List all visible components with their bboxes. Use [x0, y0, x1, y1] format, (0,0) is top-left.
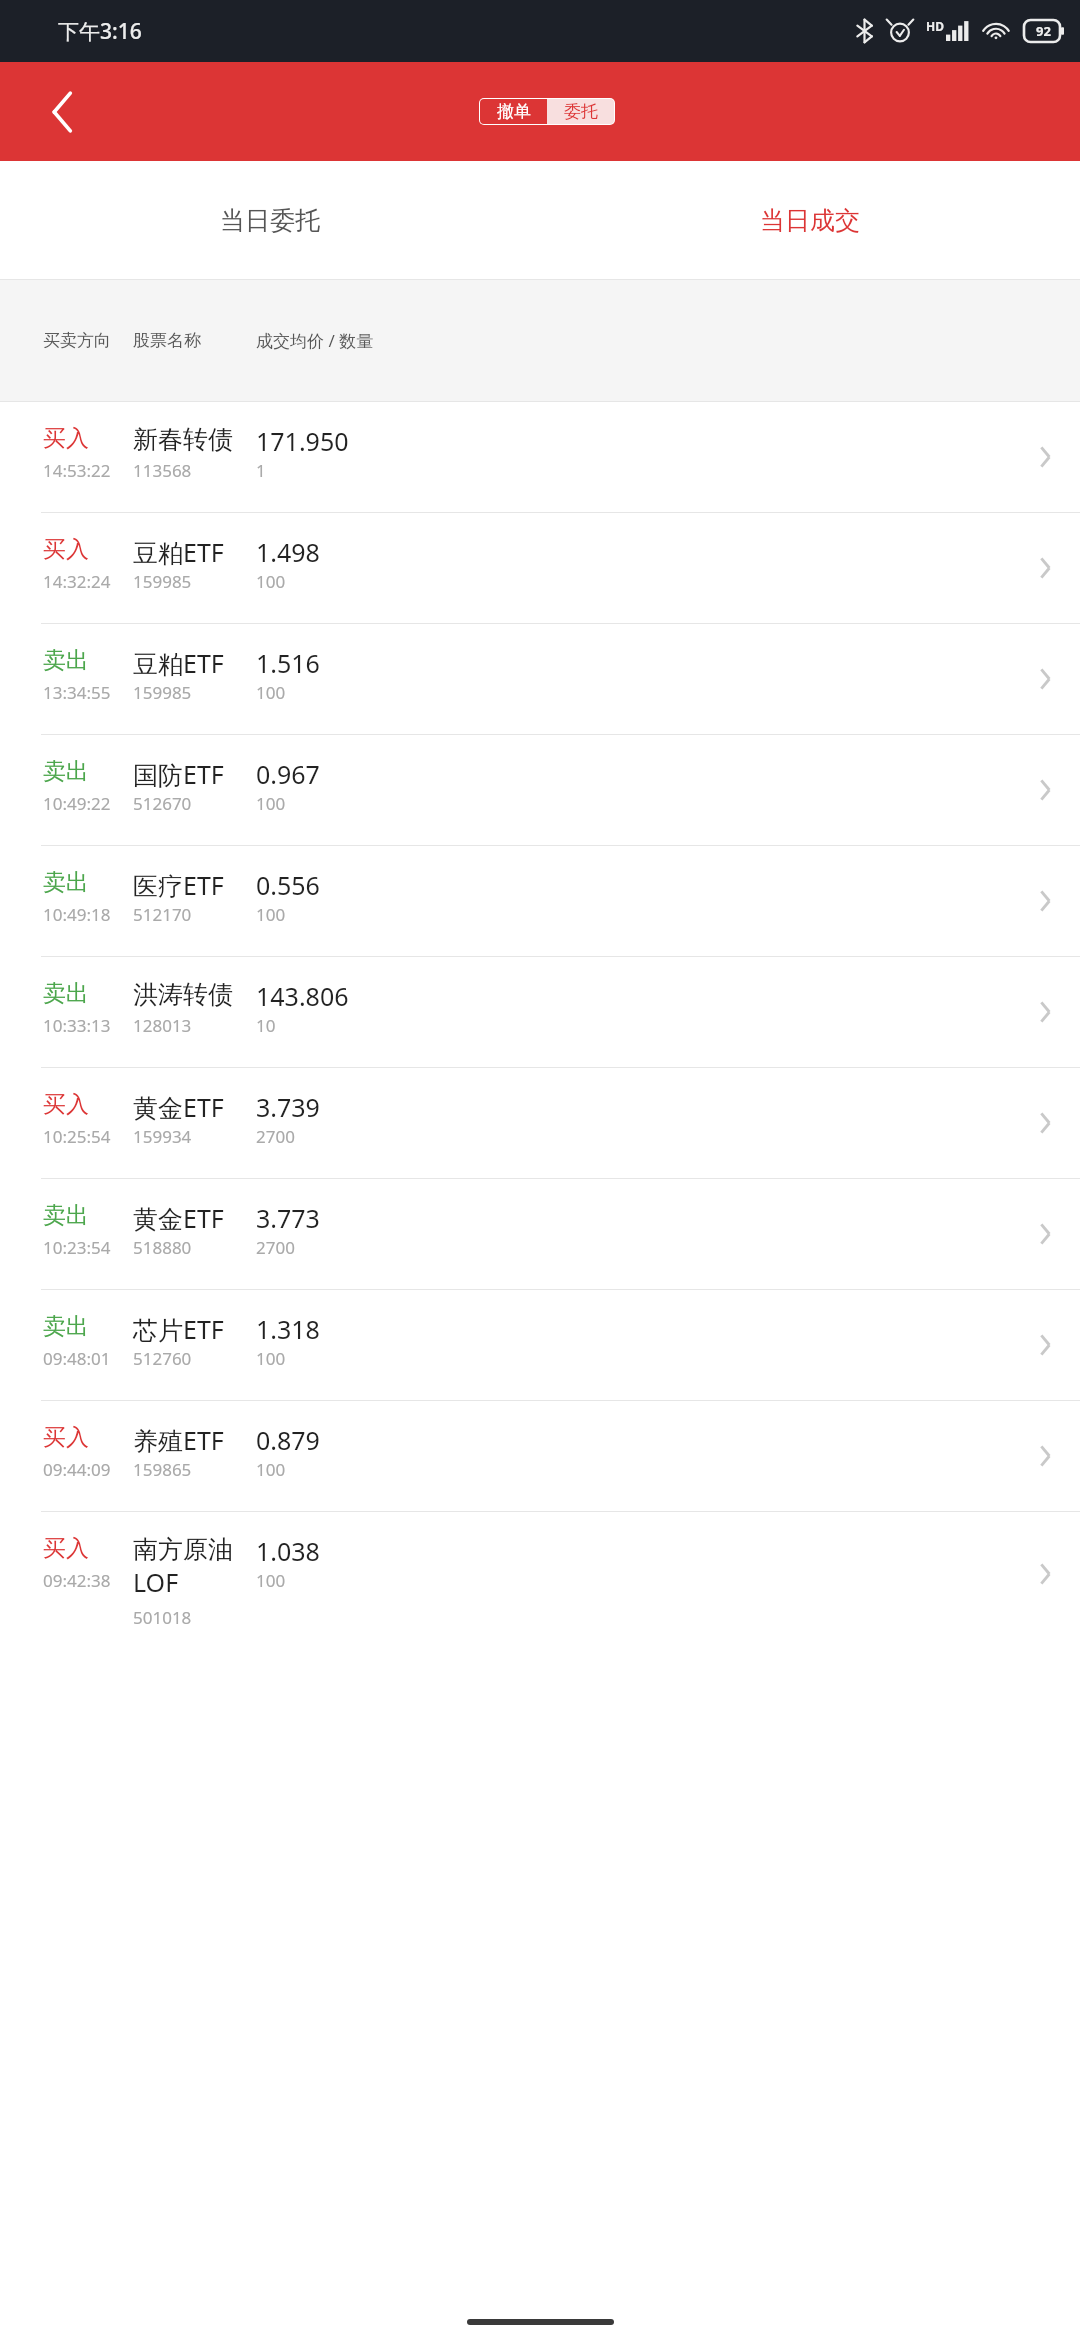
staticText: 买入	[43, 1534, 89, 1563]
staticText: 成交均价 / 数量	[256, 329, 374, 352]
staticText: 卖出	[43, 646, 89, 675]
staticText: 买入	[43, 535, 89, 564]
button[interactable]: 买入	[0, 1401, 1080, 1511]
staticText: 100	[256, 681, 286, 704]
button[interactable]: 卖出	[0, 846, 1080, 956]
staticText: 买入	[43, 1423, 89, 1452]
staticText: 0.967	[256, 757, 320, 791]
button[interactable]: 当日委托	[0, 161, 540, 279]
staticText: 3.739	[256, 1090, 320, 1124]
staticText: 518880	[133, 1236, 192, 1259]
staticText: 100	[256, 792, 286, 815]
button[interactable]: 买入	[0, 1068, 1080, 1178]
button[interactable]: 买入	[0, 402, 1080, 512]
staticText: 芯片ETF	[133, 1312, 224, 1346]
staticText: 13:34:55	[43, 681, 111, 704]
staticText: 1	[256, 459, 266, 482]
staticText: 0.556	[256, 868, 320, 902]
staticText: 143.806	[256, 979, 349, 1013]
staticText: 卖出	[43, 868, 89, 897]
button[interactable]: 当日成交	[540, 161, 1080, 279]
staticText: 卖出	[43, 1201, 89, 1230]
staticText: 当日委托	[220, 205, 320, 236]
staticText: 512670	[133, 792, 192, 815]
staticText: 卖出	[43, 757, 89, 786]
staticText: 92	[1036, 22, 1051, 40]
staticText: 卖出	[43, 1312, 89, 1341]
staticText: 1.038	[256, 1534, 320, 1568]
button[interactable]: 卖出	[0, 1179, 1080, 1289]
staticText: 159985	[133, 570, 192, 593]
staticText: 南方原油 LOF	[133, 1534, 233, 1599]
staticText: 159985	[133, 681, 192, 704]
staticText: 159934	[133, 1125, 192, 1148]
staticText: 1.498	[256, 535, 320, 569]
staticText: 100	[256, 570, 286, 593]
staticText: 501018	[133, 1606, 192, 1629]
staticText: 买入	[43, 1090, 89, 1119]
staticText: 171.950	[256, 424, 349, 458]
staticText: 当日成交	[760, 205, 860, 236]
staticText: 09:44:09	[43, 1458, 111, 1481]
staticText: 113568	[133, 459, 192, 482]
staticText: HD	[926, 18, 944, 34]
staticText: 养殖ETF	[133, 1423, 224, 1457]
staticText: 14:53:22	[43, 459, 111, 482]
staticText: 委托	[564, 101, 598, 122]
staticText: 100	[256, 903, 286, 926]
staticText: 09:48:01	[43, 1347, 111, 1370]
staticText: 0.879	[256, 1423, 320, 1457]
staticText: 下午3:16	[58, 17, 142, 46]
staticText: 100	[256, 1458, 286, 1481]
button[interactable]: 卖出	[0, 1290, 1080, 1400]
button[interactable]: 撤单	[480, 99, 547, 124]
staticText: 国防ETF	[133, 757, 224, 791]
staticText: 10:49:22	[43, 792, 111, 815]
staticText: 洪涛转债	[133, 979, 233, 1010]
staticText: 14:32:24	[43, 570, 111, 593]
staticText: 卖出	[43, 979, 89, 1008]
staticText: 09:42:38	[43, 1569, 111, 1592]
staticText: 豆粕ETF	[133, 535, 224, 569]
button[interactable]: 卖出	[0, 624, 1080, 734]
staticText: 2700	[256, 1236, 295, 1259]
staticText: 新春转债	[133, 424, 233, 455]
staticText: 股票名称	[133, 330, 201, 351]
staticText: 128013	[133, 1014, 192, 1037]
button[interactable]: 委托	[547, 99, 614, 124]
staticText: 豆粕ETF	[133, 646, 224, 680]
staticText: 买入	[43, 424, 89, 453]
button[interactable]: 卖出	[0, 957, 1080, 1067]
staticText: 100	[256, 1569, 286, 1592]
staticText: 买卖方向	[43, 330, 111, 351]
button[interactable]: Back	[22, 72, 102, 152]
staticText: 512760	[133, 1347, 192, 1370]
staticText: 10:33:13	[43, 1014, 111, 1037]
staticText: 512170	[133, 903, 192, 926]
staticText: 159865	[133, 1458, 192, 1481]
button[interactable]: 买入	[0, 1512, 1080, 1659]
staticText: 2700	[256, 1125, 295, 1148]
button[interactable]: 买入	[0, 513, 1080, 623]
staticText: 撤单	[497, 101, 531, 122]
staticText: 黄金ETF	[133, 1090, 224, 1124]
staticText: 10:23:54	[43, 1236, 111, 1259]
button[interactable]: 卖出	[0, 735, 1080, 845]
staticText: 黄金ETF	[133, 1201, 224, 1235]
staticText: 3.773	[256, 1201, 320, 1235]
staticText: 1.516	[256, 646, 320, 680]
staticText: 10	[256, 1014, 276, 1037]
staticText: 10:25:54	[43, 1125, 111, 1148]
staticText: 1.318	[256, 1312, 320, 1346]
staticText: 医疗ETF	[133, 868, 224, 902]
staticText: 100	[256, 1347, 286, 1370]
staticText: 10:49:18	[43, 903, 111, 926]
